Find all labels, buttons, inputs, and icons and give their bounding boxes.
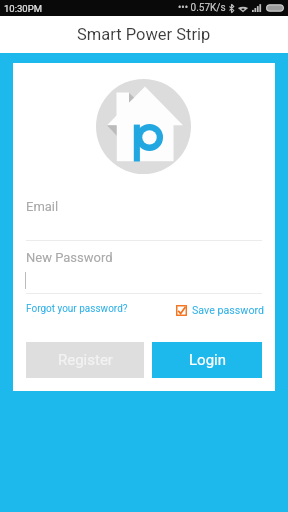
staticText: Register <box>58 351 113 369</box>
button[interactable]: Login <box>152 342 262 378</box>
staticText: ••• 0.57K/s <box>178 2 226 14</box>
staticText: Save password <box>192 304 265 317</box>
staticText: Email <box>26 199 59 214</box>
staticText: 10:30PM <box>4 3 42 14</box>
button[interactable]: Forgot your password? <box>26 303 128 315</box>
staticText: Login <box>189 351 226 369</box>
staticText: Smart Power Strip <box>77 25 211 44</box>
staticText: New Password <box>26 250 113 265</box>
button[interactable]: Save password <box>176 304 265 317</box>
button[interactable]: Register <box>26 342 144 378</box>
